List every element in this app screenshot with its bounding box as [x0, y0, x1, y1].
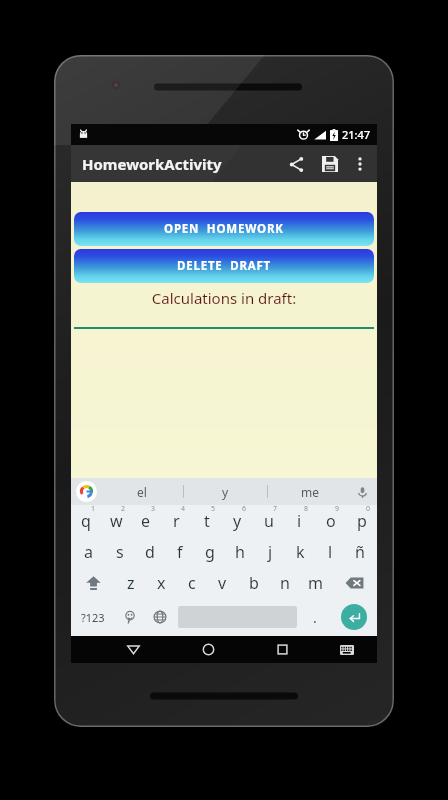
staticText: f — [177, 541, 183, 563]
button[interactable]: Back — [106, 636, 161, 663]
button[interactable]: Backspace — [331, 567, 377, 598]
button[interactable]: me — [268, 478, 351, 505]
button[interactable]: w — [101, 505, 131, 536]
button[interactable]: . — [300, 598, 330, 636]
staticText: 6 — [242, 504, 247, 514]
button[interactable]: Voice input — [352, 482, 372, 502]
button[interactable]: y — [222, 505, 253, 536]
button[interactable]: Shift — [71, 567, 116, 598]
staticText: j — [268, 541, 273, 563]
button[interactable]: Share — [279, 147, 313, 181]
button[interactable]: h — [225, 536, 255, 567]
button[interactable]: u — [253, 505, 284, 536]
staticText: n — [280, 572, 290, 594]
staticText: . — [313, 608, 317, 627]
staticText: g — [205, 541, 215, 563]
staticText: i — [297, 510, 302, 532]
button[interactable]: k — [285, 536, 315, 567]
button[interactable]: DELETE DRAFT — [74, 249, 374, 283]
staticText: y — [222, 484, 229, 500]
button[interactable]: c — [176, 567, 207, 598]
button[interactable]: m — [300, 567, 331, 598]
button[interactable]: Recent apps — [255, 636, 309, 663]
button[interactable]: v — [207, 567, 238, 598]
button[interactable]: el — [101, 478, 183, 505]
staticText: 4 — [181, 504, 186, 514]
staticText: 5 — [211, 504, 216, 514]
button[interactable]: q — [71, 505, 101, 536]
button[interactable]: l — [315, 536, 345, 567]
button[interactable]: ñ — [345, 536, 375, 567]
staticText: p — [357, 510, 367, 532]
button[interactable]: Emoji and comma — [115, 598, 145, 636]
button[interactable]: s — [104, 536, 135, 567]
staticText: c — [188, 572, 196, 594]
button[interactable]: g — [195, 536, 225, 567]
button[interactable]: e — [131, 505, 161, 536]
staticText: e — [141, 510, 151, 532]
button[interactable]: d — [135, 536, 165, 567]
button[interactable]: Google search — [76, 481, 97, 502]
staticText: 8 — [304, 504, 309, 514]
staticText: el — [137, 484, 147, 500]
staticText: u — [264, 510, 274, 532]
staticText: me — [301, 484, 319, 500]
staticText: 21:47 — [342, 127, 371, 142]
button[interactable]: n — [269, 567, 300, 598]
button[interactable]: z — [116, 567, 146, 598]
staticText: OPEN HOMEWORK — [164, 221, 284, 237]
button[interactable]: o — [315, 505, 346, 536]
staticText: b — [249, 572, 259, 594]
staticText: o — [326, 510, 336, 532]
staticText: d — [145, 541, 155, 563]
staticText: r — [173, 510, 180, 532]
button[interactable]: t — [191, 505, 222, 536]
button[interactable]: Change language — [145, 598, 175, 636]
button[interactable]: More options — [347, 151, 373, 177]
staticText: Calculations in draft: — [71, 288, 377, 308]
button[interactable]: p — [346, 505, 377, 536]
button[interactable]: i — [284, 505, 315, 536]
staticText: 1 — [91, 504, 96, 514]
button[interactable]: Switch keyboard — [321, 636, 372, 663]
button[interactable]: ?123 — [71, 598, 115, 636]
button[interactable]: j — [255, 536, 285, 567]
staticText: l — [328, 541, 333, 563]
staticText: z — [127, 572, 135, 594]
staticText: 2 — [121, 504, 126, 514]
staticText: w — [110, 510, 123, 532]
button[interactable]: a — [73, 536, 104, 567]
staticText: 0 — [366, 504, 371, 514]
staticText: y — [233, 510, 242, 532]
staticText: x — [157, 572, 166, 594]
button[interactable]: OPEN HOMEWORK — [74, 212, 374, 246]
button[interactable]: Enter — [330, 598, 377, 636]
button[interactable]: Save — [313, 147, 347, 181]
staticText: DELETE DRAFT — [177, 258, 272, 274]
staticText: ?123 — [81, 610, 105, 625]
button[interactable]: y — [184, 478, 267, 505]
staticText: s — [116, 541, 124, 563]
staticText: ñ — [355, 541, 365, 563]
staticText: v — [218, 572, 227, 594]
staticText: HomeworkActivity — [82, 154, 222, 174]
staticText: q — [81, 510, 91, 532]
staticText: 7 — [273, 504, 278, 514]
staticText: m — [308, 572, 323, 594]
button[interactable]: r — [161, 505, 191, 536]
staticText: 9 — [335, 504, 340, 514]
button[interactable]: x — [146, 567, 176, 598]
staticText: 3 — [151, 504, 156, 514]
staticText: t — [204, 510, 210, 532]
staticText: a — [84, 541, 93, 563]
staticText: h — [235, 541, 245, 563]
staticText: k — [296, 541, 305, 563]
button[interactable]: f — [165, 536, 195, 567]
button[interactable]: Home — [181, 636, 235, 663]
button[interactable]: b — [238, 567, 269, 598]
